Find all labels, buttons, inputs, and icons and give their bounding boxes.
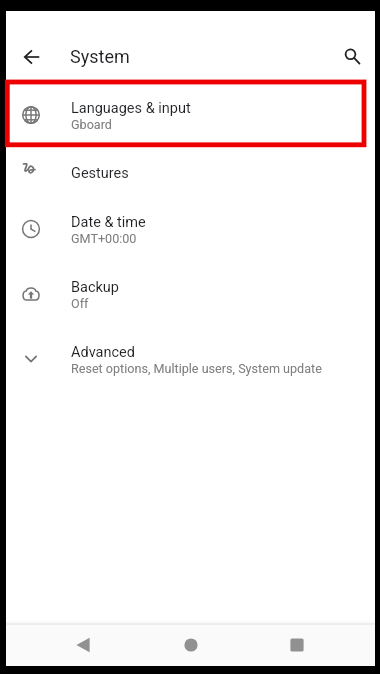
staticText: Languages & input: [71, 100, 191, 117]
staticText: Date & time: [71, 214, 146, 231]
staticText: Gboard: [71, 117, 112, 132]
staticText: Gestures: [71, 165, 129, 182]
button[interactable]: Search: [334, 38, 370, 74]
staticText: Backup: [71, 279, 119, 296]
button[interactable]: Backup: [6, 261, 375, 326]
staticText: GMT+00:00: [71, 231, 137, 246]
staticText: Advanced: [71, 344, 135, 361]
staticText: Reset options, Multiple users, System up…: [71, 361, 322, 376]
button[interactable]: Recents: [275, 624, 319, 665]
button[interactable]: Back: [61, 624, 105, 665]
staticText: System: [70, 46, 130, 67]
staticText: Off: [71, 296, 89, 311]
button[interactable]: Back: [14, 39, 50, 75]
button[interactable]: Gestures: [6, 147, 375, 196]
button[interactable]: Languages & input: [6, 82, 375, 147]
button[interactable]: Advanced: [6, 326, 375, 391]
button[interactable]: Home: [169, 624, 213, 665]
button[interactable]: Date & time: [6, 196, 375, 261]
